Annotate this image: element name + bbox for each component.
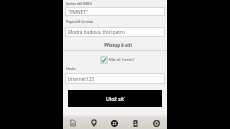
staticText: "PMNET" — [68, 9, 88, 15]
staticText: Popis sítě či místa — [66, 19, 93, 24]
button[interactable]: Settings — [146, 115, 167, 129]
button[interactable]: Places — [83, 115, 104, 129]
button[interactable]: Devices — [125, 115, 146, 129]
button[interactable]: "PMNET" — [65, 7, 165, 16]
button[interactable]: Internet123 — [65, 73, 165, 84]
staticText: Přístup k síti — [66, 42, 170, 48]
button[interactable]: Documents — [63, 115, 83, 129]
staticText: Heslo: — [66, 66, 76, 71]
staticText: Jméno sítě (SSID) — [66, 1, 92, 6]
staticText: Modrá budova, třetí patro — [68, 29, 125, 35]
button[interactable]: Record — [104, 115, 125, 129]
button[interactable]: Ulož síť — [68, 90, 162, 107]
staticText: Internet123 — [68, 76, 95, 82]
button[interactable]: Modrá budova, třetí patro — [65, 27, 165, 37]
button[interactable]: Má síť heslo? — [66, 56, 170, 64]
staticText: Ulož síť — [106, 95, 125, 102]
staticText: Má síť heslo? — [109, 57, 135, 63]
